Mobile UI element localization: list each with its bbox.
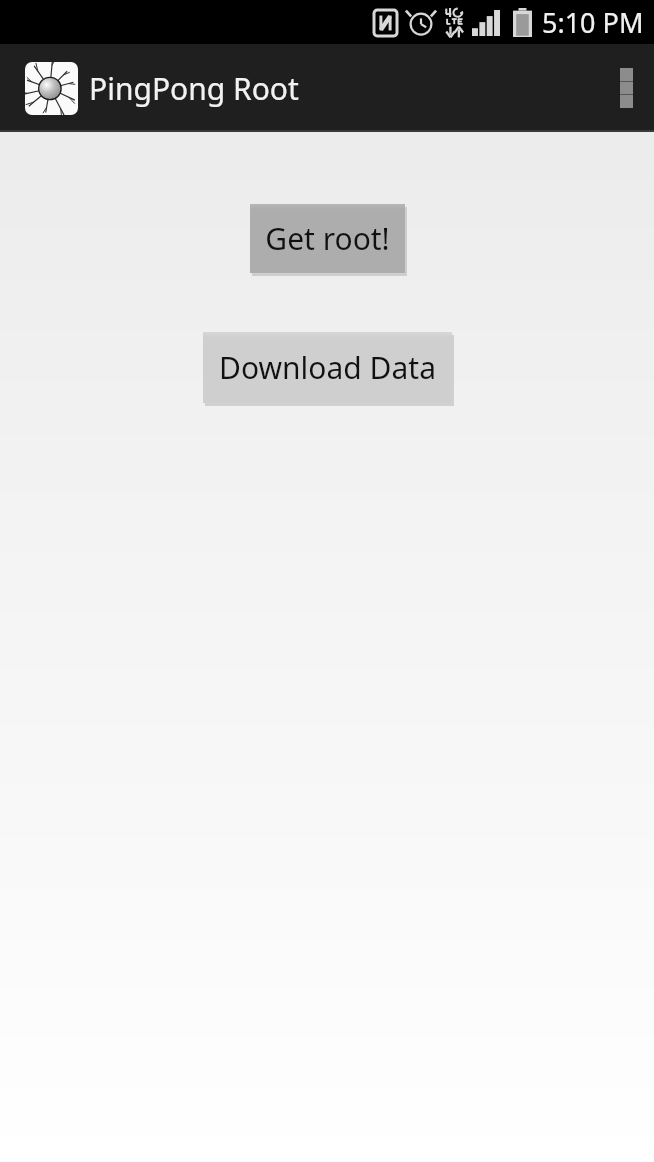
staticText: PingPong Root [89,68,299,109]
staticText: Get root! [265,218,390,259]
button[interactable]: PingPong Root app icon [25,62,78,115]
button[interactable]: Download Data [203,332,452,403]
button[interactable]: Get root! [250,204,405,273]
staticText: 5:10 PM [542,4,644,41]
button[interactable]: More options [598,44,654,132]
staticText: Download Data [219,347,436,388]
